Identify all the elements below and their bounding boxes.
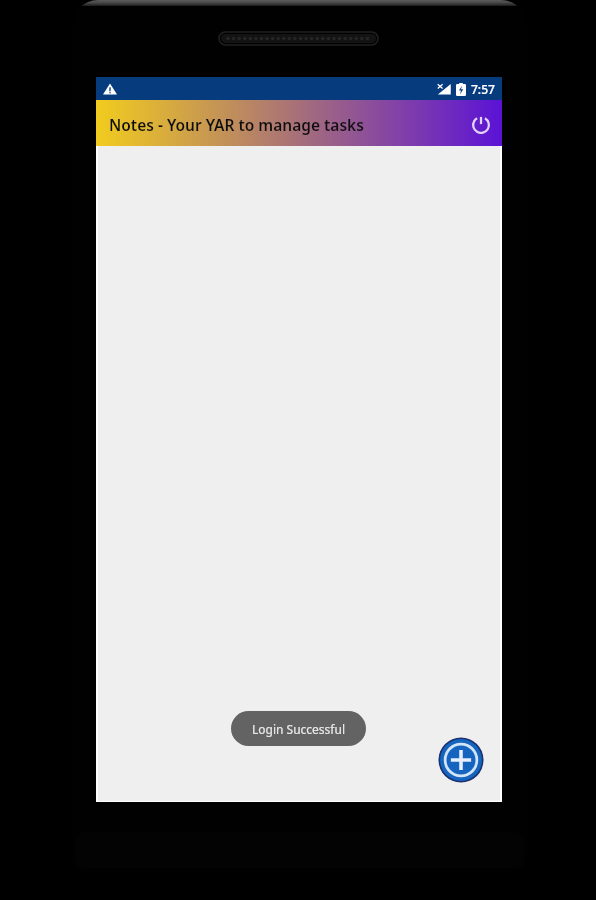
staticText: 7:57 — [471, 81, 495, 97]
button[interactable]: Logout — [466, 110, 496, 140]
button[interactable]: Add note — [438, 737, 484, 783]
staticText: Login Successful — [252, 721, 345, 737]
staticText: Notes - Your YAR to manage tasks — [109, 114, 364, 135]
